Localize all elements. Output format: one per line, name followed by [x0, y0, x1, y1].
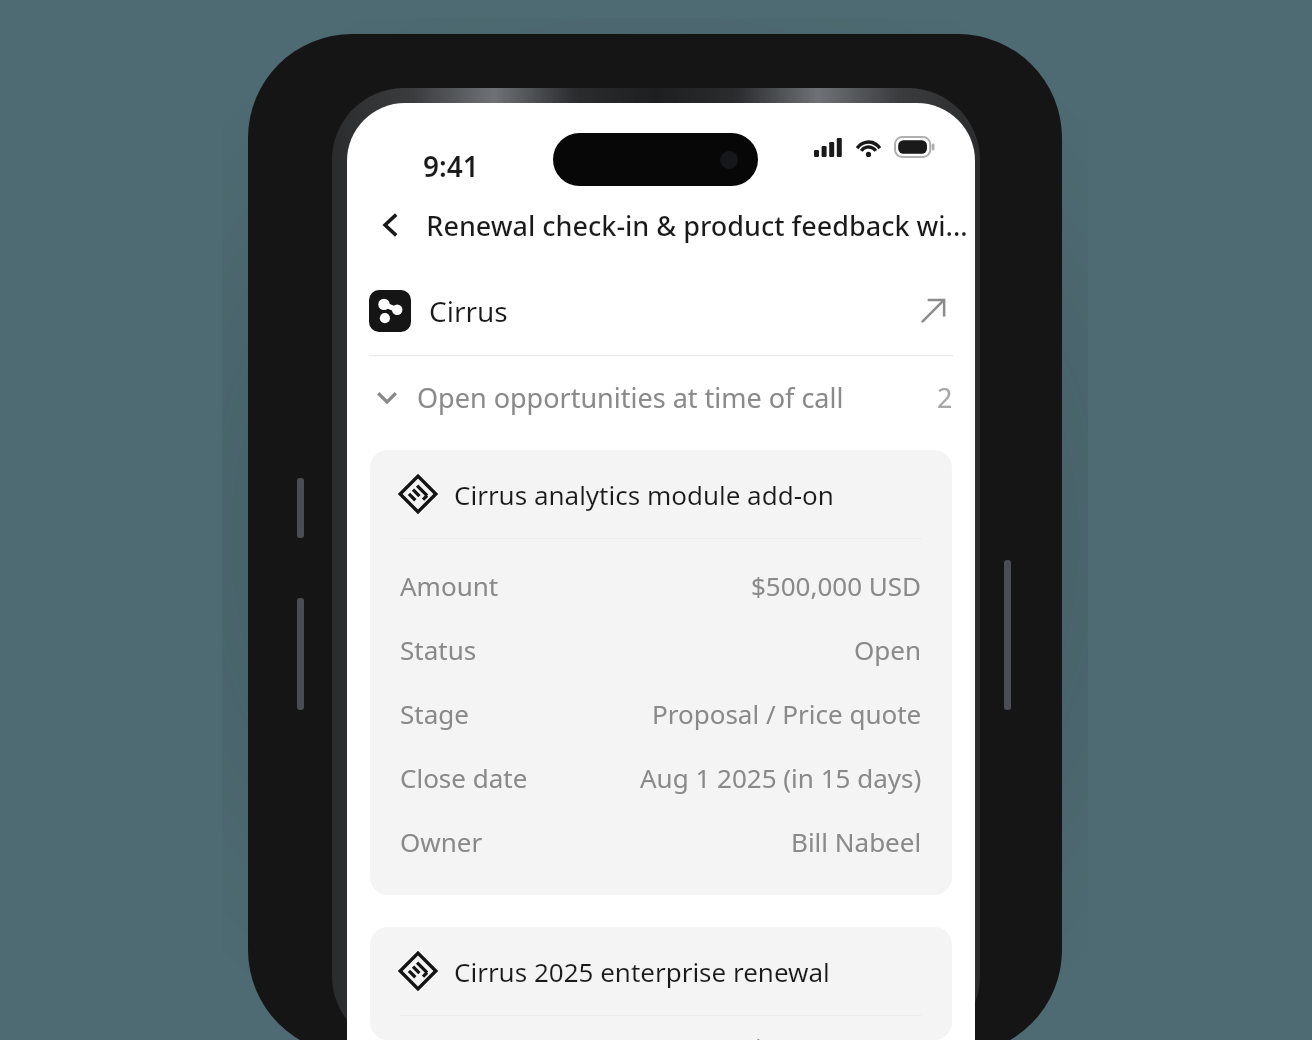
staticText: Open opportunities at time of call: [417, 379, 844, 416]
staticText: Owner: [400, 824, 483, 859]
staticText: Open: [854, 632, 922, 667]
button[interactable]: Back: [365, 199, 417, 251]
staticText: Close date: [400, 760, 528, 795]
staticText: 2: [937, 379, 953, 416]
other: Open in new: [913, 291, 953, 331]
button[interactable]: Open opportunities at time of call: [347, 356, 975, 438]
button[interactable]: Cirrus: [347, 267, 975, 355]
staticText: Amount: [400, 568, 499, 603]
staticText: Cirrus analytics module add-on: [454, 477, 834, 512]
staticText: Status: [400, 632, 477, 667]
staticText: Cirrus 2025 enterprise renewal: [454, 954, 830, 989]
staticText: $500,000 USD: [751, 568, 922, 603]
staticText: Proposal / Price quote: [652, 696, 922, 731]
staticText: Cirrus: [429, 292, 508, 330]
button[interactable]: Cirrus 2025 enterprise renewal: [370, 927, 952, 1040]
staticText: Stage: [400, 696, 469, 731]
button[interactable]: Cirrus analytics module add-on: [370, 450, 952, 895]
staticText: Aug 1 2025 (in 15 days): [640, 760, 922, 795]
staticText: Renewal check-in & product feedback wi..…: [419, 207, 975, 244]
staticText: 9:41: [423, 147, 479, 183]
staticText: Bill Nabeel: [791, 824, 922, 859]
